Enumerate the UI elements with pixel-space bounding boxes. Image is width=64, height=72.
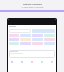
button[interactable]	[9, 29, 31, 33]
staticText: Instant Answers	[23, 2, 42, 5]
staticText: A clean way to explore and save what mat…	[15, 6, 50, 12]
button[interactable]	[9, 50, 55, 58]
